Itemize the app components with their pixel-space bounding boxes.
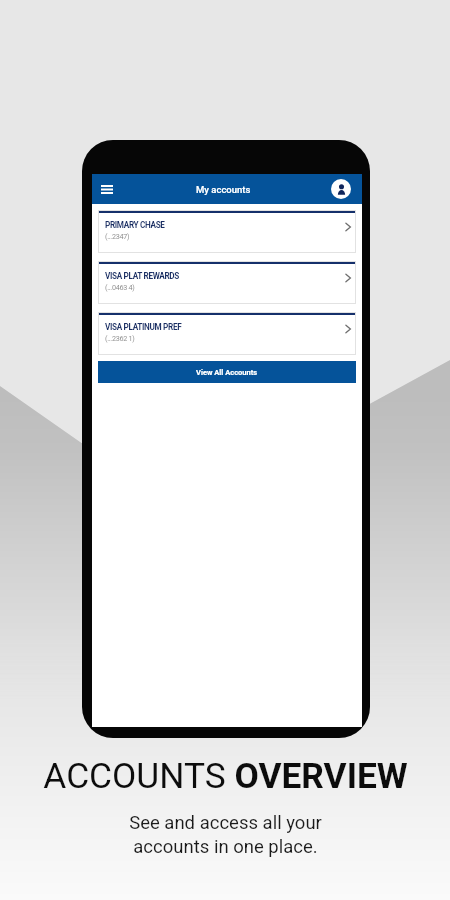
button[interactable]: VISA PLATINUM PREF	[98, 312, 356, 355]
button[interactable]: PRIMARY CHASE	[98, 210, 356, 253]
staticText: (...2347)	[105, 232, 130, 240]
staticText: (...2362 1)	[105, 334, 135, 342]
button[interactable]: View All Accounts	[98, 361, 356, 383]
button[interactable]: Menu	[98, 179, 116, 199]
button[interactable]: Profile	[331, 179, 351, 199]
button[interactable]: VISA PLAT REWARDS	[98, 261, 356, 304]
staticText: ACCOUNTS OVERVIEW	[43, 755, 408, 796]
staticText: VISA PLATINUM PREF	[105, 322, 182, 332]
staticText: View All Accounts	[196, 368, 258, 377]
staticText: PRIMARY CHASE	[105, 220, 165, 230]
staticText: See and access all your accounts in one …	[129, 812, 322, 858]
staticText: My accounts	[196, 184, 251, 195]
staticText: (...0463 4)	[105, 283, 135, 291]
staticText: VISA PLAT REWARDS	[105, 271, 180, 281]
